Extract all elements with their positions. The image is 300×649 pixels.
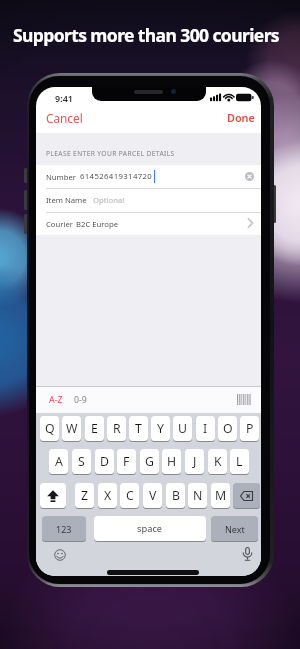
button[interactable] [242,547,253,562]
staticText: N [193,487,203,504]
staticText: Y [157,420,164,437]
button[interactable]: 0-9 [74,394,87,406]
button[interactable]: M [211,483,230,508]
button[interactable]: A-Z [49,394,63,406]
staticText: J [193,453,197,470]
staticText: C [126,487,134,504]
staticText: Item Name [46,195,87,205]
button[interactable]: R [107,416,126,441]
button[interactable]: G [140,449,159,474]
staticText: V [149,487,157,504]
staticText: Optional [93,195,125,205]
staticText: U [178,420,187,437]
staticText: H [167,453,177,470]
button[interactable]: V [143,483,162,508]
button[interactable]: L [230,449,249,474]
staticText: B [172,487,180,504]
staticText: Done [227,110,255,125]
button[interactable] [245,172,254,181]
staticText: Q [45,420,55,437]
button[interactable]: N [188,483,207,508]
staticText: 0-9 [74,394,87,406]
staticText: Number [46,172,77,182]
button[interactable]: C [120,483,139,508]
button[interactable]: T [129,416,148,441]
staticText: A [55,453,63,470]
button[interactable]: K [208,449,227,474]
staticText: Courier [46,219,73,229]
button[interactable]: S [72,449,91,474]
staticText: X [104,487,112,504]
button[interactable]: Z [75,483,94,508]
staticText: space [137,522,163,535]
button[interactable]: A [49,449,68,474]
button[interactable] [237,394,251,405]
button[interactable]: B [166,483,185,508]
staticText: A-Z [49,394,63,406]
staticText: K [214,453,222,470]
button[interactable] [40,483,66,508]
staticText: D [100,453,109,470]
staticText: T [135,420,142,437]
button[interactable]: D [95,449,114,474]
button[interactable]: Courier [36,212,261,235]
button[interactable]: Done [227,110,255,125]
button[interactable]: J [185,449,204,474]
button[interactable] [54,549,66,561]
staticText: 123 [56,523,72,535]
staticText: L [236,453,243,470]
staticText: 9:41 [55,92,73,104]
staticText: 614526419314720 [80,171,153,182]
staticText: G [145,453,154,470]
staticText: W [66,420,78,437]
staticText: B2C Europe [76,219,119,229]
button[interactable]: E [85,416,104,441]
button[interactable] [233,483,260,508]
staticText: O [223,420,233,437]
staticText: P [246,420,254,437]
staticText: S [78,453,85,470]
staticText: Supports more than 300 couriers [0,23,296,47]
button[interactable]: H [162,449,181,474]
staticText: I [203,420,208,437]
button[interactable]: 123 [42,516,86,541]
staticText: Z [81,487,89,504]
staticText: M [215,487,227,504]
button[interactable]: space [94,516,206,541]
staticText: PLEASE ENTER YOUR PARCEL DETAILS [46,149,175,158]
button[interactable]: Q [40,416,59,441]
staticText: Next [225,523,245,535]
button[interactable]: U [173,416,192,441]
button[interactable]: O [218,416,237,441]
button[interactable]: P [240,416,259,441]
button[interactable]: Next [211,516,258,541]
button[interactable]: Cancel [46,110,83,125]
button[interactable]: X [98,483,117,508]
button[interactable]: F [117,449,136,474]
staticText: Cancel [46,110,83,125]
button[interactable]: Y [151,416,170,441]
staticText: E [91,420,98,437]
button[interactable]: I [196,416,215,441]
button[interactable]: Item Name [36,188,261,211]
button[interactable]: Number [36,165,261,188]
button[interactable]: W [62,416,81,441]
staticText: R [113,420,121,437]
staticText: F [123,453,130,470]
